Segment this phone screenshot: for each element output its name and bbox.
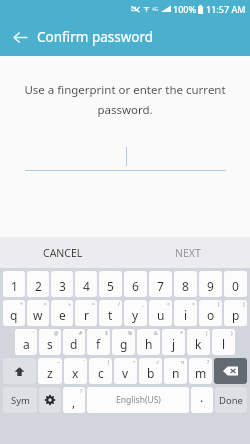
button[interactable]: > <box>174 300 197 326</box>
button[interactable]: π <box>164 358 187 384</box>
staticText: Sym <box>11 394 30 407</box>
staticText: g <box>120 336 128 352</box>
staticText: ( <box>206 330 208 337</box>
staticText: 7 <box>157 278 164 294</box>
staticText: s <box>47 336 53 352</box>
staticText: w <box>33 307 43 323</box>
staticText: , <box>72 394 76 410</box>
button[interactable]: . <box>191 387 213 413</box>
button[interactable]: 6 <box>124 271 147 297</box>
staticText: * <box>180 330 183 337</box>
button[interactable]: Sym <box>3 387 37 413</box>
button[interactable]: 3 <box>51 271 73 297</box>
staticText: p <box>232 307 240 323</box>
staticText: NEXT <box>175 246 201 260</box>
staticText: q <box>10 307 18 323</box>
button[interactable]: ~ <box>38 358 62 384</box>
staticText: t <box>108 307 113 323</box>
staticText: . <box>200 389 204 405</box>
staticText: @ <box>54 330 59 337</box>
button[interactable]: Back <box>7 24 33 50</box>
button[interactable]: ` <box>64 358 87 384</box>
staticText: _ <box>142 301 145 308</box>
staticText: ÷ <box>68 301 71 308</box>
button[interactable]: 2 <box>27 271 49 297</box>
staticText: 8 <box>182 278 189 294</box>
button[interactable]: • <box>114 358 137 384</box>
staticText: 1 <box>11 278 18 294</box>
staticText: Use a fingerprint or enter the current <box>16 82 234 98</box>
button[interactable]: [ <box>199 300 222 326</box>
staticText: i <box>184 307 188 323</box>
staticText: h <box>145 336 153 352</box>
staticText: 3 <box>59 278 66 294</box>
button[interactable]: 7 <box>149 271 172 297</box>
staticText: & <box>154 330 158 337</box>
button[interactable]: NEXT <box>125 237 250 268</box>
staticText: e <box>59 307 66 323</box>
button[interactable]: English(US) <box>87 387 189 413</box>
staticText: | <box>107 359 110 366</box>
staticText: = <box>92 301 95 308</box>
button[interactable]: 0 <box>224 271 247 297</box>
button[interactable]: ) <box>212 329 235 355</box>
button[interactable]: Shift <box>3 358 36 384</box>
staticText: ~ <box>57 359 60 366</box>
staticText: 100% <box>173 3 197 15</box>
button[interactable]: 8 <box>174 271 197 297</box>
staticText: / <box>118 301 120 308</box>
staticText: k <box>195 336 202 352</box>
staticText: [ <box>218 301 220 308</box>
button[interactable]: + <box>3 300 25 326</box>
button[interactable]: < <box>149 300 172 326</box>
button[interactable]: 9 <box>199 271 222 297</box>
staticText: ? <box>80 388 83 395</box>
staticText: d <box>70 336 78 352</box>
staticText: f <box>96 336 101 352</box>
staticText: + <box>20 301 23 308</box>
button[interactable]: * <box>162 329 185 355</box>
staticText: z <box>47 365 53 381</box>
staticText: ' <box>33 330 35 337</box>
button[interactable]: 1 <box>3 271 25 297</box>
button[interactable]: CANCEL <box>0 237 125 268</box>
button[interactable]: ? <box>189 358 212 384</box>
staticText: 6 <box>132 278 139 294</box>
staticText: m <box>195 365 207 381</box>
button[interactable]: Keyboard settings <box>39 387 61 413</box>
button[interactable]: @ <box>39 329 61 355</box>
button[interactable]: √ <box>139 358 162 384</box>
staticText: $ <box>105 330 108 337</box>
staticText: √ <box>156 359 160 365</box>
staticText: a <box>23 336 30 352</box>
button[interactable]: × <box>27 300 49 326</box>
staticText: π <box>181 359 185 366</box>
button[interactable]: _ <box>124 300 147 326</box>
button[interactable]: ? <box>63 387 85 413</box>
button[interactable]: ' <box>15 329 37 355</box>
button[interactable]: Backspace <box>214 358 247 384</box>
button[interactable]: Done <box>215 387 247 413</box>
button[interactable]: | <box>89 358 112 384</box>
staticText: 4G <box>152 6 159 13</box>
button[interactable]: ÷ <box>51 300 73 326</box>
button[interactable]: 5 <box>99 271 122 297</box>
staticText: n <box>172 365 180 381</box>
staticText: 2 <box>35 278 42 294</box>
staticText: r <box>84 307 89 323</box>
staticText: 9 <box>207 278 214 294</box>
button[interactable]: 4 <box>75 271 97 297</box>
button[interactable]: # <box>63 329 85 355</box>
staticText: j <box>172 336 176 352</box>
staticText: English(US) <box>116 394 161 406</box>
staticText: b <box>147 365 155 381</box>
button[interactable]: ( <box>187 329 210 355</box>
button[interactable]: / <box>99 300 122 326</box>
button[interactable]: & <box>137 329 160 355</box>
button[interactable]: = <box>75 300 97 326</box>
staticText: ] <box>243 301 245 308</box>
button[interactable]: ] <box>224 300 247 326</box>
button[interactable]: $ <box>87 329 110 355</box>
button[interactable]: % <box>112 329 135 355</box>
staticText: Done <box>219 394 243 407</box>
